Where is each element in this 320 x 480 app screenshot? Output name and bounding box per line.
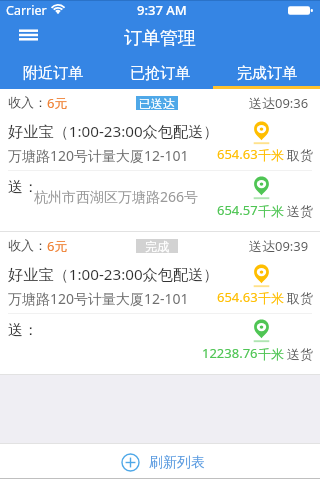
button[interactable]: 完成 [136,239,178,253]
button[interactable]: 收入： [0,232,320,374]
staticText: 收入： [8,94,47,110]
button[interactable]: 已送达 [136,96,178,110]
staticText: 12238.76 [202,344,258,362]
button[interactable]: 刷新列表 [121,453,205,472]
button[interactable]: 已抢订单 [106,56,213,89]
staticText: 654.63 [217,145,258,163]
button[interactable]: 完成订单 [213,56,320,89]
staticText: Carrier [6,2,47,19]
staticText: 万塘路120号计量大厦12-101 [8,146,189,165]
button[interactable]: 附近订单 [0,56,106,89]
staticText: 完成 [145,239,169,253]
staticText: 送货 [287,203,313,219]
button[interactable]: 收入： [0,89,320,231]
staticText: 送达09:39 [249,237,309,255]
staticText: 送货 [287,346,313,362]
staticText: 好业宝（1:00-23:00众包配送） [8,264,219,285]
button[interactable]: Menu [13,22,44,48]
staticText: 千米 [258,290,284,306]
staticText: 6元 [47,237,68,255]
staticText: 万塘路120号计量大厦12-101 [8,289,189,308]
staticText: 送： [8,321,38,340]
staticText: 送： [8,178,38,197]
staticText: 杭州市西湖区万塘路266号 [34,187,199,206]
staticText: 完成订单 [237,64,297,83]
staticText: 已送达 [139,96,175,110]
staticText: 取货 [287,290,313,306]
staticText: 好业宝（1:00-23:00众包配送） [8,121,219,142]
staticText: 刷新列表 [149,454,205,472]
staticText: 千米 [258,203,284,219]
staticText: 送达09:36 [249,94,309,112]
staticText: 收入： [8,237,47,253]
staticText: 订单管理 [124,27,196,50]
staticText: 千米 [258,346,284,362]
staticText: 6元 [47,94,68,112]
staticText: 取货 [287,147,313,163]
staticText: 已抢订单 [130,64,190,83]
staticText: 附近订单 [23,64,83,83]
staticText: 654.63 [217,288,258,306]
staticText: 9:37 AM [137,1,187,19]
staticText: 654.57 [217,201,258,219]
staticText: 千米 [258,147,284,163]
